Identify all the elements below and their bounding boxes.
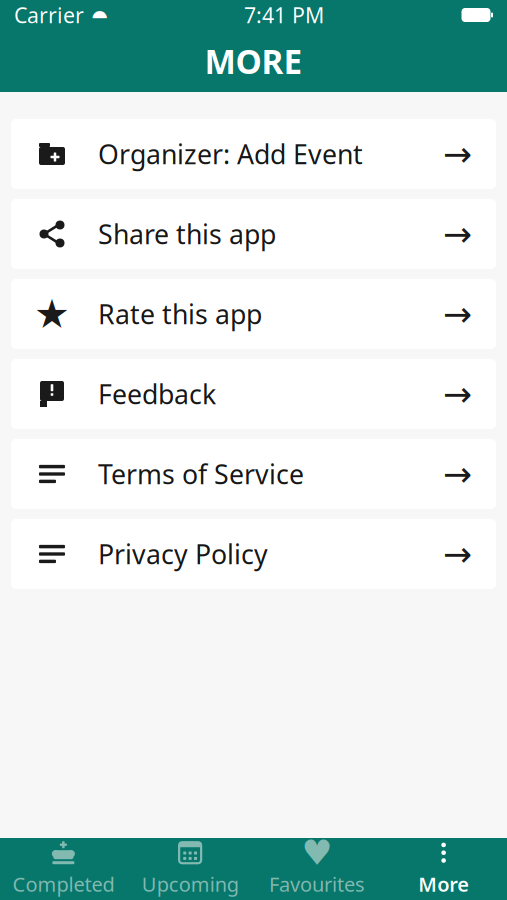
staticText: Favourites bbox=[269, 871, 365, 897]
staticText: Share this app bbox=[98, 216, 276, 252]
staticText: → bbox=[443, 534, 472, 574]
button[interactable]: More bbox=[380, 838, 507, 900]
staticText: ◗ bbox=[93, 4, 103, 26]
staticText: More bbox=[418, 871, 469, 897]
staticText: Carrier bbox=[14, 1, 84, 29]
button[interactable]: ♥ bbox=[253, 838, 380, 900]
staticText: Rate this app bbox=[98, 296, 262, 332]
staticText: MORE bbox=[204, 39, 302, 83]
staticText: ♥ bbox=[301, 833, 332, 872]
button[interactable]: Completed bbox=[0, 838, 127, 900]
staticText: 7:41 PM bbox=[244, 1, 324, 29]
button[interactable]: Feedback bbox=[11, 359, 496, 429]
button[interactable]: Privacy Policy bbox=[11, 519, 496, 589]
button[interactable]: Share this app bbox=[11, 199, 496, 269]
button[interactable]: ★ bbox=[11, 279, 496, 349]
staticText: → bbox=[443, 214, 472, 254]
staticText: Feedback bbox=[98, 376, 216, 412]
staticText: → bbox=[443, 294, 472, 334]
staticText: Terms of Service bbox=[98, 456, 304, 492]
staticText: Privacy Policy bbox=[98, 536, 268, 572]
button[interactable]: Terms of Service bbox=[11, 439, 496, 509]
staticText: → bbox=[443, 374, 472, 414]
button[interactable]: Upcoming bbox=[127, 838, 254, 900]
staticText: Upcoming bbox=[142, 871, 239, 897]
staticText: Organizer: Add Event bbox=[98, 136, 363, 172]
staticText: Completed bbox=[12, 871, 114, 897]
button[interactable]: Organizer: Add Event bbox=[11, 119, 496, 189]
staticText: → bbox=[443, 134, 472, 174]
staticText: → bbox=[443, 454, 472, 494]
staticText: ★ bbox=[34, 291, 70, 337]
